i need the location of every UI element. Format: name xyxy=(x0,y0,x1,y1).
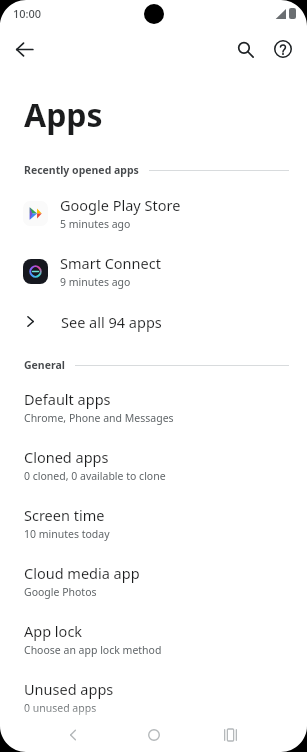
staticText: 10:00 xyxy=(13,6,42,21)
button[interactable]: Back xyxy=(58,720,88,750)
staticText: Smart Connect xyxy=(60,253,161,273)
staticText: Google Play Store xyxy=(60,195,181,215)
button[interactable]: Help xyxy=(264,30,302,68)
button[interactable]: Google Play Store xyxy=(0,184,307,242)
staticText: Unused apps xyxy=(24,679,114,699)
button[interactable]: Cloned apps xyxy=(0,436,307,494)
staticText: Cloned apps xyxy=(24,447,109,467)
button[interactable]: See all 94 apps xyxy=(0,300,307,343)
staticText: Apps xyxy=(24,93,103,137)
button[interactable]: Smart Connect xyxy=(0,242,307,300)
staticText: 5 minutes ago xyxy=(60,217,131,231)
button[interactable]: Default apps xyxy=(0,378,307,436)
staticText: Chrome, Phone and Messages xyxy=(24,411,174,425)
staticText: Cloud media app xyxy=(24,563,140,583)
staticText: Google Photos xyxy=(24,585,97,599)
button[interactable]: Unused apps xyxy=(0,668,307,726)
staticText: App lock xyxy=(24,621,83,641)
staticText: 0 cloned, 0 available to clone xyxy=(24,469,166,483)
button[interactable]: Back xyxy=(5,30,43,68)
button[interactable]: App lock xyxy=(0,610,307,668)
staticText: Recently opened apps xyxy=(24,163,139,177)
staticText: 9 minutes ago xyxy=(60,275,131,289)
button[interactable]: Screen time xyxy=(0,494,307,552)
button[interactable]: Search xyxy=(226,30,264,68)
button[interactable]: Home xyxy=(139,720,169,750)
staticText: See all 94 apps xyxy=(61,312,162,332)
staticText: Choose an app lock method xyxy=(24,643,162,657)
staticText: 0 unused apps xyxy=(24,701,97,715)
button[interactable]: Cloud media app xyxy=(0,552,307,610)
button[interactable]: Recent apps xyxy=(215,720,245,750)
staticText: General xyxy=(24,358,65,372)
staticText: Default apps xyxy=(24,389,111,409)
staticText: Screen time xyxy=(24,505,105,525)
staticText: 10 minutes today xyxy=(24,527,110,541)
